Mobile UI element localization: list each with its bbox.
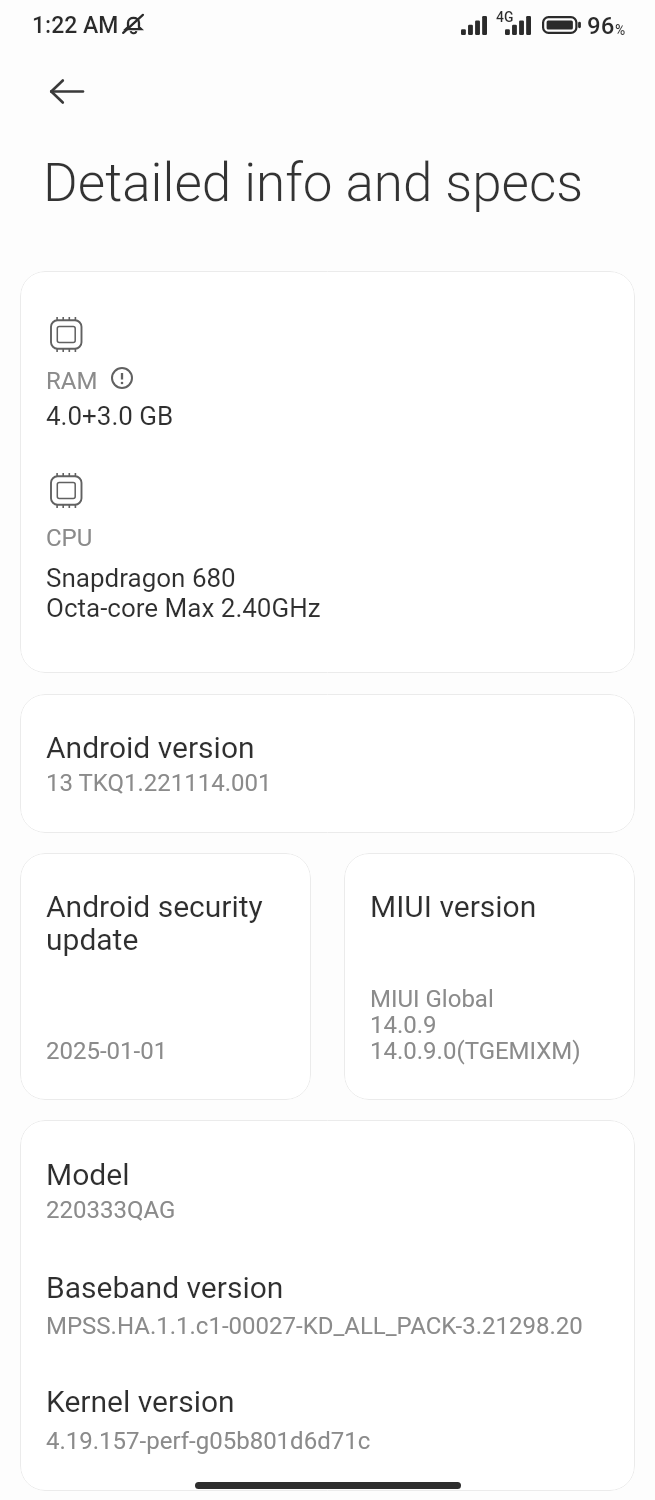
staticText: RAM xyxy=(46,367,98,395)
button[interactable]: Model xyxy=(20,1120,635,1491)
staticText: Model xyxy=(46,1157,130,1192)
staticText: MIUI Global 14.0.9 14.0.9.0(TGEMIXM) xyxy=(370,986,581,1064)
button[interactable]: RAM xyxy=(20,271,635,673)
staticText: 13 TKQ1.221114.001 xyxy=(46,769,272,797)
staticText: Kernel version xyxy=(46,1384,235,1419)
staticText: Snapdragon 680 Octa-core Max 2.40GHz xyxy=(46,563,321,623)
staticText: Android security update xyxy=(46,891,299,957)
staticText: 220333QAG xyxy=(46,1196,176,1224)
staticText: Detailed info and specs xyxy=(43,152,584,214)
button[interactable]: Android version xyxy=(20,694,635,833)
staticText: 4.19.157-perf-g05b801d6d71c xyxy=(46,1427,371,1455)
staticText: Baseband version xyxy=(46,1270,284,1305)
button[interactable]: MIUI version xyxy=(344,853,635,1100)
staticText: CPU xyxy=(46,524,93,552)
staticText: 2025-01-01 xyxy=(46,1037,168,1065)
staticText: 96 xyxy=(587,12,615,40)
staticText: 4.0+3.0 GB xyxy=(46,401,174,431)
staticText: % xyxy=(615,22,626,38)
staticText: 1:22 AM xyxy=(32,12,119,39)
staticText: Android version xyxy=(46,730,255,765)
staticText: MPSS.HA.1.1.c1-00027-KD_ALL_PACK-3.21298… xyxy=(46,1312,583,1340)
button[interactable]: Back xyxy=(39,63,95,119)
staticText: MIUI version xyxy=(370,889,537,924)
staticText: 4G xyxy=(496,9,514,25)
button[interactable]: Android security update xyxy=(20,853,311,1100)
